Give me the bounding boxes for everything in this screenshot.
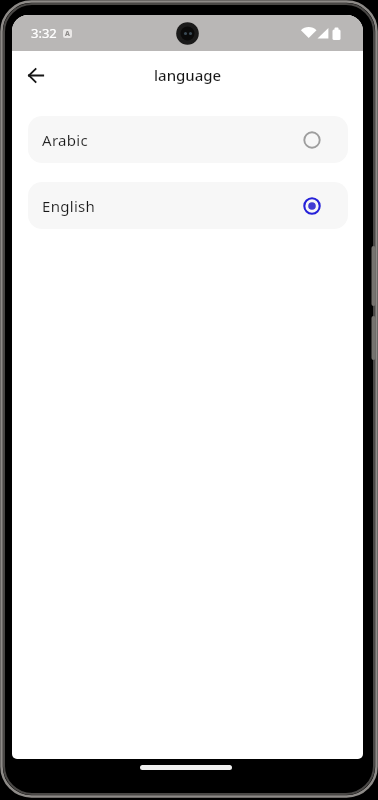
button[interactable]: Arabic [28, 116, 348, 163]
staticText: English [42, 196, 96, 216]
button[interactable] [24, 63, 48, 87]
button[interactable]: English [28, 182, 348, 229]
staticText: Arabic [42, 130, 88, 150]
staticText: A [65, 29, 70, 38]
staticText: language [154, 65, 222, 85]
staticText: 3:32 [31, 24, 57, 42]
